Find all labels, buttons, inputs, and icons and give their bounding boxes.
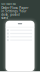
staticText: sized — [1, 16, 8, 20]
staticText: Order Flow. Paper — [1, 6, 28, 10]
staticText: desk, pocket — [1, 13, 20, 17]
staticText: in Settings. Your — [1, 9, 26, 13]
button[interactable]: Settings row — [7, 29, 32, 31]
button[interactable]: Settings row — [7, 36, 32, 38]
staticText: GET STARTED — [1, 2, 16, 6]
button[interactable]: Settings row — [7, 32, 32, 34]
button[interactable]: Settings row — [7, 39, 32, 41]
